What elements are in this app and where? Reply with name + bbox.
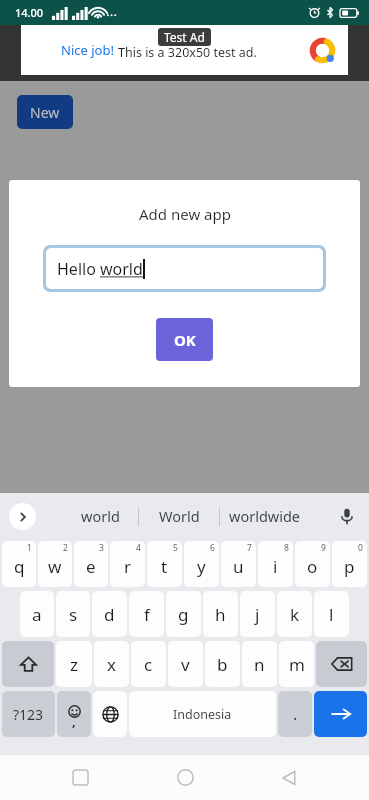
staticText: 6	[210, 542, 215, 554]
staticText: h	[215, 603, 226, 626]
staticText: o	[307, 555, 318, 578]
button[interactable]: l	[314, 591, 349, 637]
staticText: f	[144, 603, 150, 626]
button[interactable]: p	[332, 541, 367, 587]
staticText: j	[255, 603, 260, 626]
button[interactable]: f	[129, 591, 164, 637]
staticText: i	[273, 555, 278, 578]
staticText: b	[217, 653, 228, 676]
button[interactable]: b	[205, 641, 240, 687]
button[interactable]: i	[258, 541, 293, 587]
button[interactable]: k	[277, 591, 312, 637]
staticText: world	[81, 506, 120, 526]
staticText: world	[100, 258, 143, 280]
staticText: q	[14, 555, 25, 578]
button[interactable]: y	[184, 541, 219, 587]
button[interactable]: r	[110, 541, 145, 587]
staticText: p	[344, 555, 355, 578]
button[interactable]: Home	[161, 755, 209, 800]
button[interactable]: More suggestions	[9, 503, 36, 530]
button[interactable]: Shift	[2, 641, 54, 687]
button[interactable]: Enter	[314, 691, 367, 737]
button[interactable]: Change language	[93, 691, 127, 737]
staticText: k	[290, 603, 300, 626]
button[interactable]: Voice input	[334, 503, 360, 529]
button[interactable]: a	[20, 591, 54, 637]
button[interactable]: ?123	[2, 691, 55, 737]
staticText: Nice job!	[61, 41, 114, 59]
staticText: 0	[358, 542, 363, 554]
staticText: 14.00	[15, 5, 44, 20]
staticText: e	[86, 555, 96, 578]
staticText: 7	[247, 542, 252, 554]
staticText: ,	[72, 712, 76, 730]
button[interactable]: j	[240, 591, 275, 637]
button[interactable]: Recent apps	[56, 755, 104, 800]
button[interactable]: u	[221, 541, 256, 587]
button[interactable]: Back	[265, 755, 313, 800]
button[interactable]: w	[38, 541, 72, 587]
button[interactable]: Indonesia	[129, 691, 276, 737]
button[interactable]: n	[242, 641, 277, 687]
button[interactable]: e	[74, 541, 108, 587]
button[interactable]: g	[166, 591, 201, 637]
button[interactable]: Nice job!	[21, 25, 348, 75]
staticText: 8	[284, 542, 289, 554]
button[interactable]: x	[94, 641, 129, 687]
button[interactable]: Emoji	[57, 691, 91, 737]
staticText: Indonesia	[173, 706, 232, 723]
staticText: Test Ad	[164, 29, 205, 45]
staticText: ?123	[13, 705, 44, 724]
button[interactable]: New	[17, 95, 73, 129]
button[interactable]: d	[92, 591, 127, 637]
staticText: Add new app	[139, 204, 231, 224]
staticText: y	[197, 555, 206, 578]
staticText: World	[159, 506, 200, 526]
staticText: This is a 320x50 test ad.	[118, 44, 257, 61]
staticText: m	[289, 653, 305, 676]
staticText: OK	[174, 330, 196, 350]
staticText: x	[107, 653, 116, 676]
button[interactable]: Hello	[46, 248, 323, 289]
button[interactable]: World	[139, 493, 219, 539]
button[interactable]: Backspace	[316, 641, 367, 687]
button[interactable]: v	[168, 641, 203, 687]
button[interactable]: .	[278, 691, 312, 737]
staticText: 1	[27, 542, 32, 554]
button[interactable]: worldwide	[220, 493, 310, 539]
button[interactable]: z	[56, 641, 92, 687]
staticText: n	[254, 653, 265, 676]
staticText: a	[32, 603, 42, 626]
staticText: z	[70, 653, 78, 676]
staticText: t	[161, 555, 168, 578]
button[interactable]: s	[56, 591, 90, 637]
button[interactable]: world	[62, 493, 138, 539]
button[interactable]: c	[131, 641, 166, 687]
staticText: Hello	[57, 258, 100, 280]
button[interactable]: q	[2, 541, 36, 587]
staticText: u	[233, 555, 244, 578]
button[interactable]: h	[203, 591, 238, 637]
staticText: w	[48, 555, 62, 578]
button[interactable]: m	[279, 641, 314, 687]
staticText: 5	[173, 542, 178, 554]
staticText: s	[69, 603, 78, 626]
staticText: r	[124, 555, 132, 578]
staticText: 2	[63, 542, 68, 554]
staticText: worldwide	[229, 506, 301, 526]
staticText: v	[181, 653, 190, 676]
staticText: g	[178, 603, 189, 626]
staticText: New	[30, 103, 60, 122]
staticText: l	[329, 603, 334, 626]
staticText: d	[104, 603, 115, 626]
staticText: 3	[99, 542, 104, 554]
button[interactable]: OK	[156, 318, 213, 361]
staticText: c	[144, 653, 153, 676]
button[interactable]: t	[147, 541, 182, 587]
staticText: .	[293, 703, 298, 725]
staticText: 4	[136, 542, 141, 554]
button[interactable]: o	[295, 541, 330, 587]
staticText: 9	[321, 542, 326, 554]
